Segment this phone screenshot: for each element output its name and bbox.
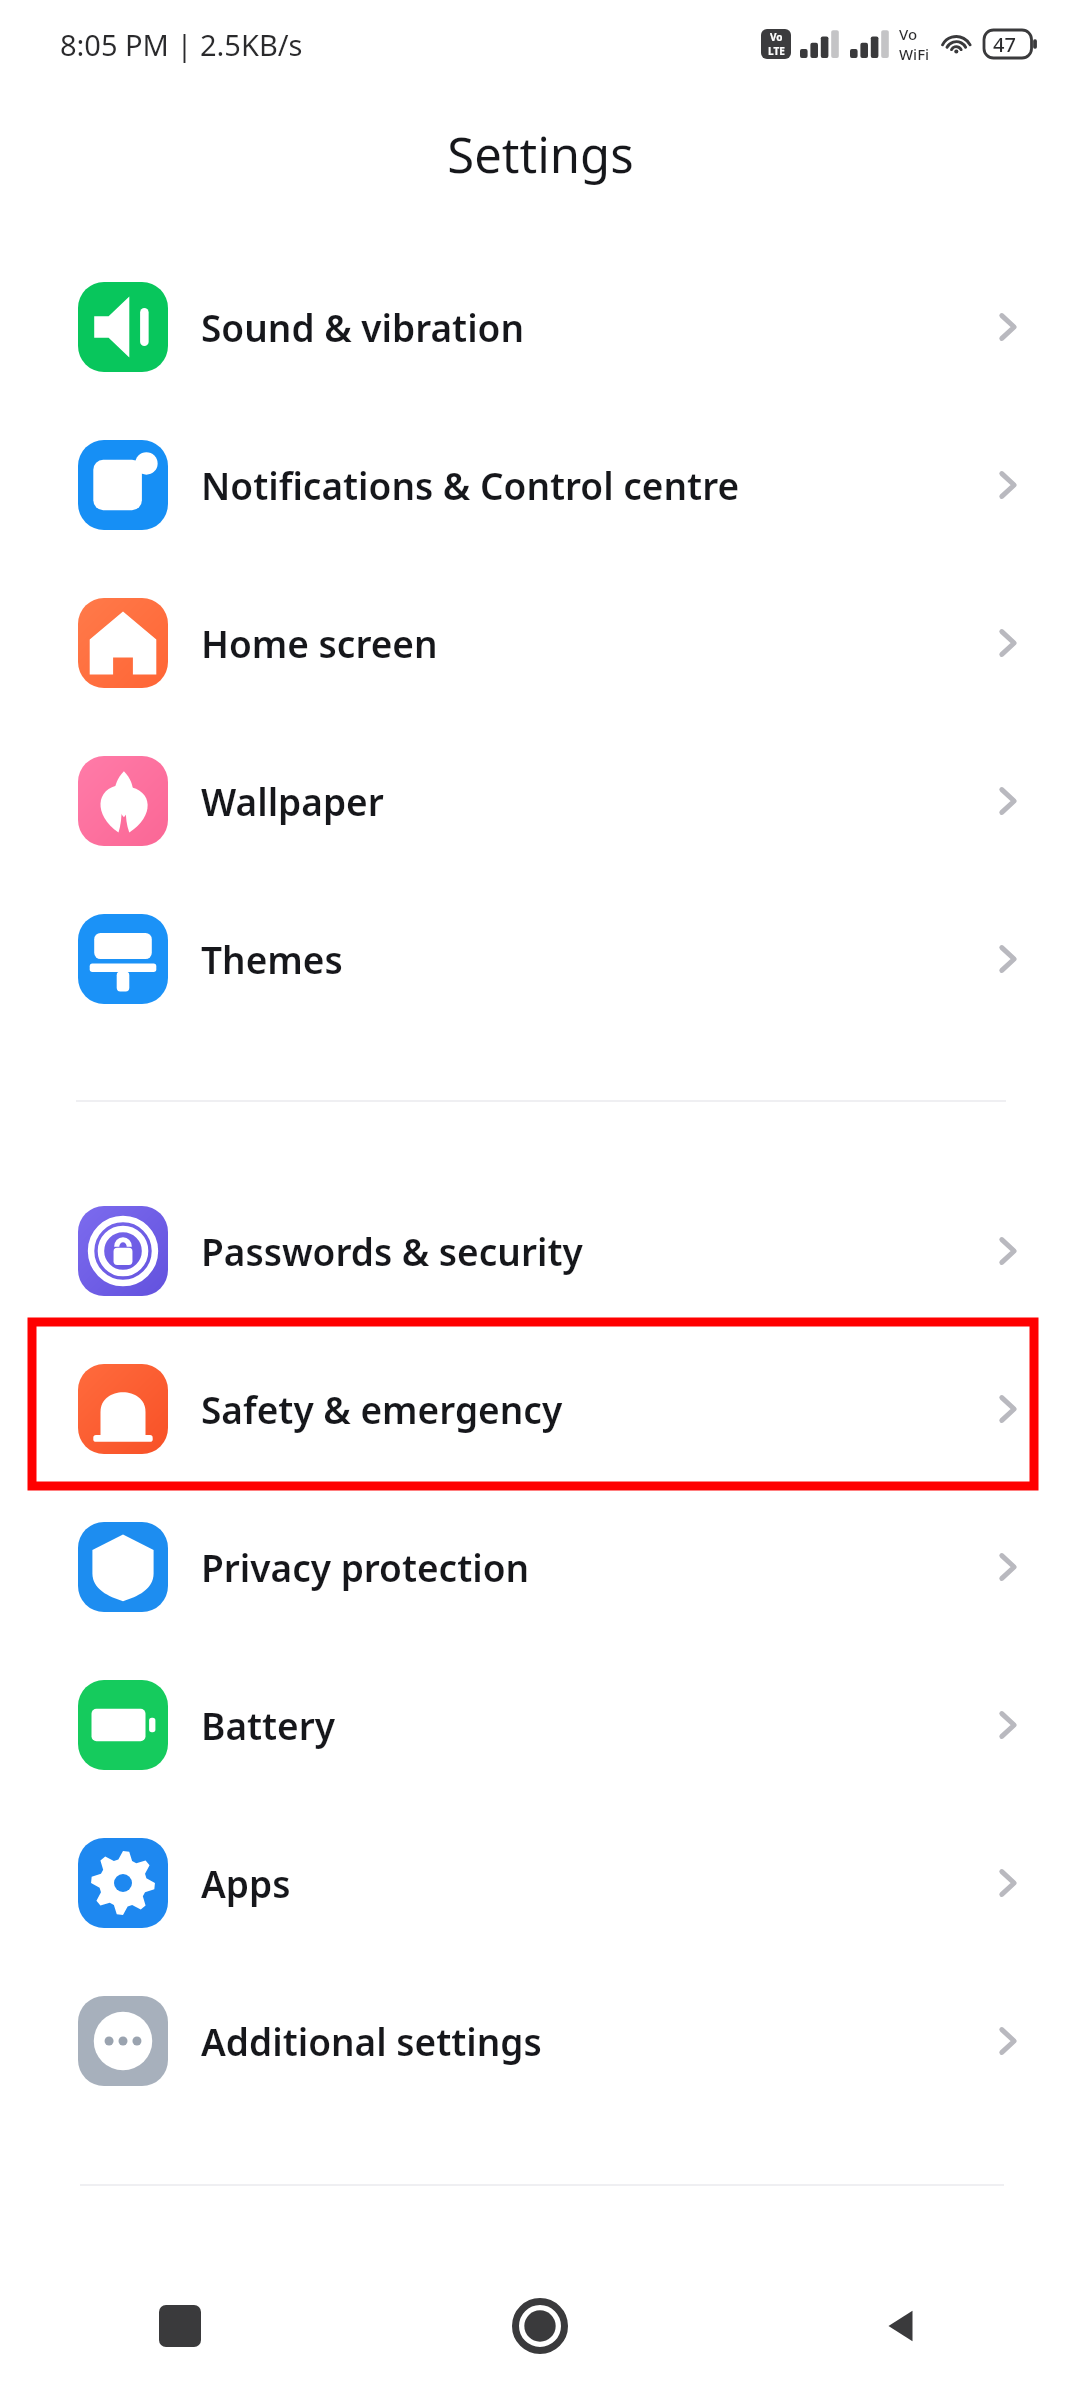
button[interactable]: Additional settings	[0, 1962, 1080, 2120]
button[interactable]: Themes	[0, 880, 1080, 1038]
button[interactable]: Safety & emergency	[0, 1330, 1080, 1488]
staticText: Passwords & security	[201, 1226, 986, 1276]
button[interactable]: Home	[360, 2252, 720, 2400]
staticText: Notifications & Control centre	[201, 460, 986, 510]
button[interactable]: Sound & vibration	[0, 248, 1080, 406]
staticText: 8:05 PM | 2.5KB/s	[60, 25, 303, 64]
staticText: Sound & vibration	[201, 302, 986, 352]
button[interactable]: Battery	[0, 1646, 1080, 1804]
button[interactable]: Recent apps	[0, 2252, 360, 2400]
staticText: Safety & emergency	[201, 1384, 986, 1434]
staticText: Themes	[201, 934, 986, 984]
staticText: Apps	[201, 1858, 986, 1908]
staticText: Additional settings	[201, 2016, 986, 2066]
staticText: Vo	[770, 30, 783, 44]
staticText: Home screen	[201, 618, 986, 668]
staticText: Privacy protection	[201, 1542, 986, 1592]
staticText: WiFi	[899, 44, 930, 64]
staticText: Vo	[899, 24, 918, 44]
button[interactable]: Apps	[0, 1804, 1080, 1962]
button[interactable]: Wallpaper	[0, 722, 1080, 880]
button[interactable]: Notifications & Control centre	[0, 406, 1080, 564]
button[interactable]: Privacy protection	[0, 1488, 1080, 1646]
staticText: Wallpaper	[201, 776, 986, 826]
button[interactable]: Passwords & security	[0, 1172, 1080, 1330]
staticText: Battery	[201, 1700, 986, 1750]
staticText: 47	[993, 31, 1016, 58]
staticText: LTE	[768, 44, 785, 58]
button[interactable]: Back	[720, 2252, 1080, 2400]
staticText: Settings	[447, 121, 634, 188]
button[interactable]: Home screen	[0, 564, 1080, 722]
